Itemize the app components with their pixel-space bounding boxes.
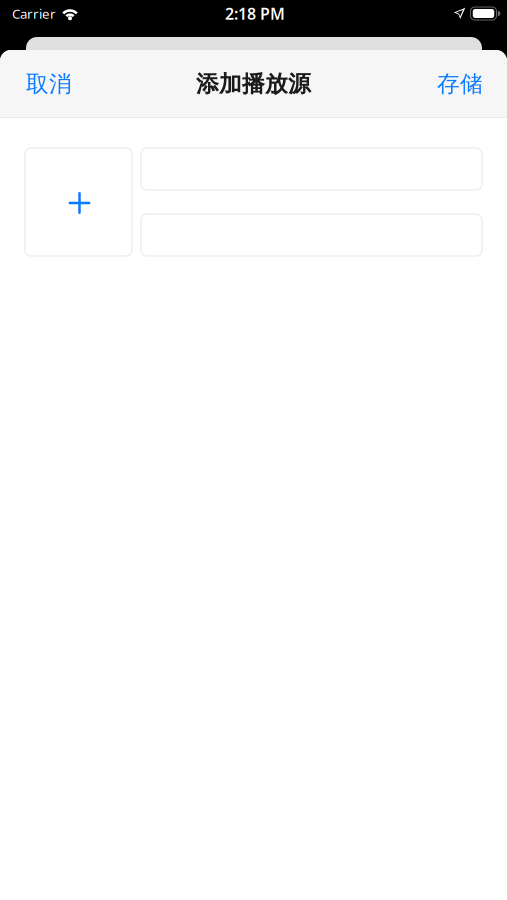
button[interactable]: 添加封面	[25, 148, 132, 256]
staticText: 存储	[437, 70, 483, 98]
staticText: 取消	[26, 70, 72, 98]
button[interactable]: 取消	[0, 56, 90, 112]
staticText: 添加播放源	[196, 70, 311, 98]
staticText: 2:18 PM	[225, 3, 285, 24]
staticText: Carrier	[12, 5, 56, 22]
button[interactable]: 存储	[419, 56, 507, 112]
